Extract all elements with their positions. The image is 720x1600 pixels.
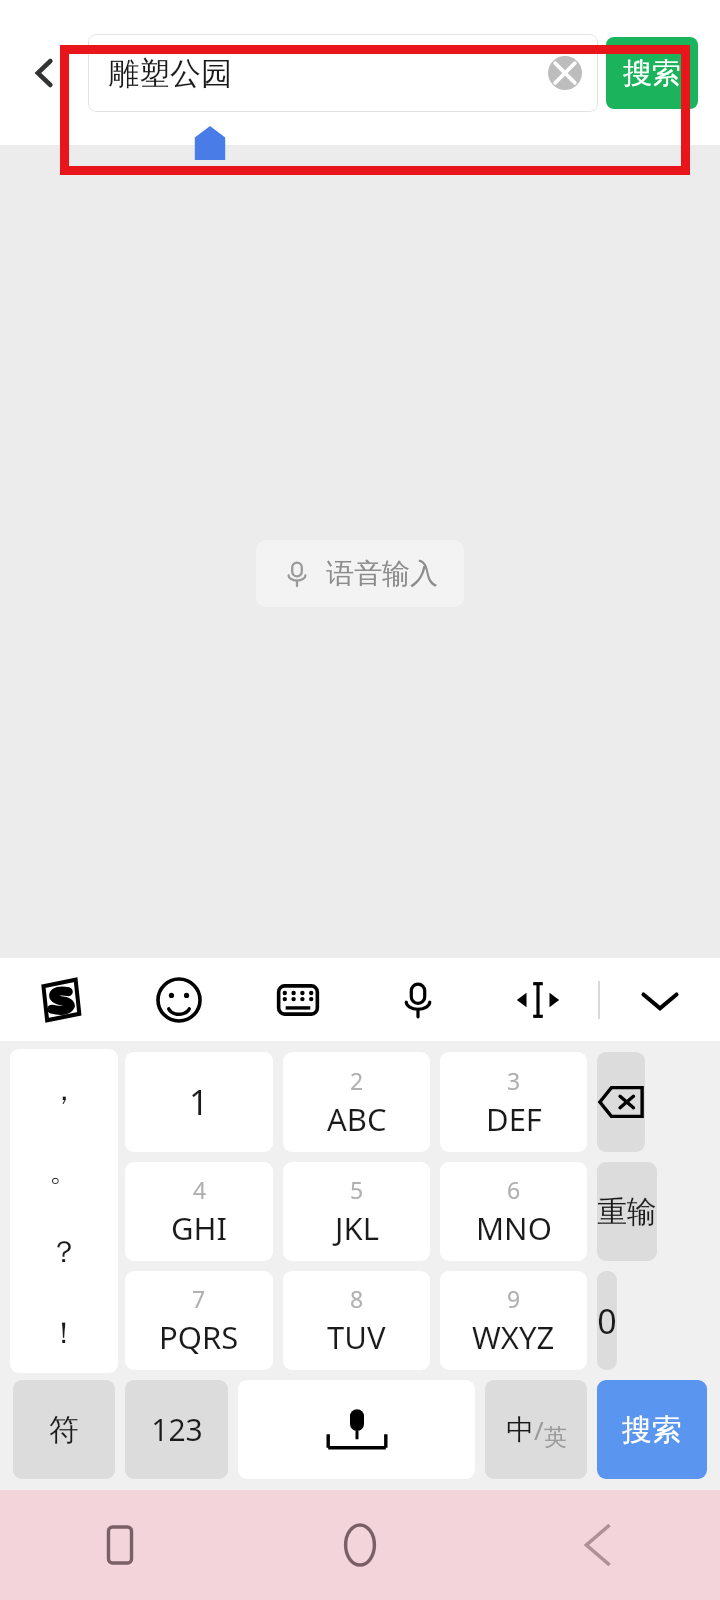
button[interactable]: Space [238, 1380, 475, 1479]
button[interactable]: Recents [0, 1490, 240, 1600]
staticText: / [534, 1412, 544, 1447]
button[interactable]: 。 [10, 1130, 118, 1211]
staticText: PQRS [159, 1316, 239, 1358]
staticText: ！ [49, 1314, 79, 1352]
staticText: 6 [507, 1174, 521, 1205]
staticText: GHI [171, 1207, 228, 1249]
button[interactable]: 重输 [597, 1162, 657, 1261]
button[interactable]: Move cursor [478, 958, 598, 1041]
staticText: 0 [597, 1298, 617, 1344]
staticText: MNO [476, 1207, 552, 1249]
button[interactable]: 8 [283, 1271, 430, 1370]
staticText: TUV [327, 1316, 386, 1358]
button[interactable]: 5 [283, 1162, 430, 1261]
staticText: 1 [189, 1079, 209, 1125]
button[interactable]: Home [240, 1490, 480, 1600]
staticText: JKL [335, 1207, 379, 1249]
button[interactable]: Hide keyboard [600, 958, 720, 1041]
button[interactable]: Clear text [538, 46, 592, 100]
staticText: 7 [192, 1283, 206, 1314]
staticText: ， [49, 1071, 79, 1109]
button[interactable]: Voice input [358, 958, 478, 1041]
staticText: WXYZ [472, 1316, 555, 1358]
button[interactable]: ？ [10, 1211, 118, 1292]
staticText: 搜索 [623, 55, 681, 92]
button[interactable]: 符 [13, 1380, 115, 1479]
staticText: 符 [49, 1411, 79, 1449]
button[interactable]: 2 [283, 1052, 430, 1152]
staticText: 4 [193, 1174, 207, 1205]
staticText: 9 [507, 1283, 521, 1314]
staticText: 雕塑公园 [108, 54, 538, 93]
staticText: 重输 [597, 1193, 657, 1231]
button[interactable]: 6 [440, 1162, 587, 1261]
button[interactable]: Back [480, 1490, 720, 1600]
staticText: 搜索 [622, 1411, 682, 1449]
staticText: 语音输入 [326, 556, 438, 591]
button[interactable]: 雕塑公园 [88, 34, 598, 112]
staticText: 中 [506, 1412, 534, 1447]
button[interactable]: 搜索 [606, 37, 698, 109]
button[interactable]: 语音输入 [256, 540, 464, 607]
button[interactable]: 4 [125, 1162, 273, 1261]
button[interactable]: 3 [440, 1052, 587, 1152]
staticText: 8 [350, 1283, 364, 1314]
button[interactable]: Backspace [597, 1052, 645, 1152]
staticText: 2 [350, 1065, 364, 1096]
button[interactable]: 0 [597, 1271, 617, 1370]
staticText: DEF [486, 1098, 542, 1140]
button[interactable]: 123 [125, 1380, 228, 1479]
button[interactable]: Sogou input [0, 958, 119, 1041]
staticText: 英 [544, 1423, 567, 1452]
staticText: 5 [350, 1174, 364, 1205]
button[interactable]: Keyboard layout [238, 958, 358, 1041]
button[interactable]: 7 [125, 1271, 273, 1370]
button[interactable]: 中 [485, 1380, 587, 1479]
button[interactable]: Back [14, 42, 76, 104]
button[interactable]: 搜索 [597, 1380, 707, 1479]
button[interactable]: ， [10, 1049, 118, 1130]
button[interactable]: 1 [125, 1052, 273, 1152]
staticText: 3 [507, 1065, 521, 1096]
button[interactable]: ！ [10, 1292, 118, 1373]
button[interactable]: Emoji [119, 958, 238, 1041]
staticText: 123 [151, 1409, 203, 1450]
staticText: ABC [327, 1098, 387, 1140]
button[interactable]: 9 [440, 1271, 587, 1370]
staticText: 。 [49, 1152, 79, 1190]
staticText: ？ [49, 1233, 79, 1271]
